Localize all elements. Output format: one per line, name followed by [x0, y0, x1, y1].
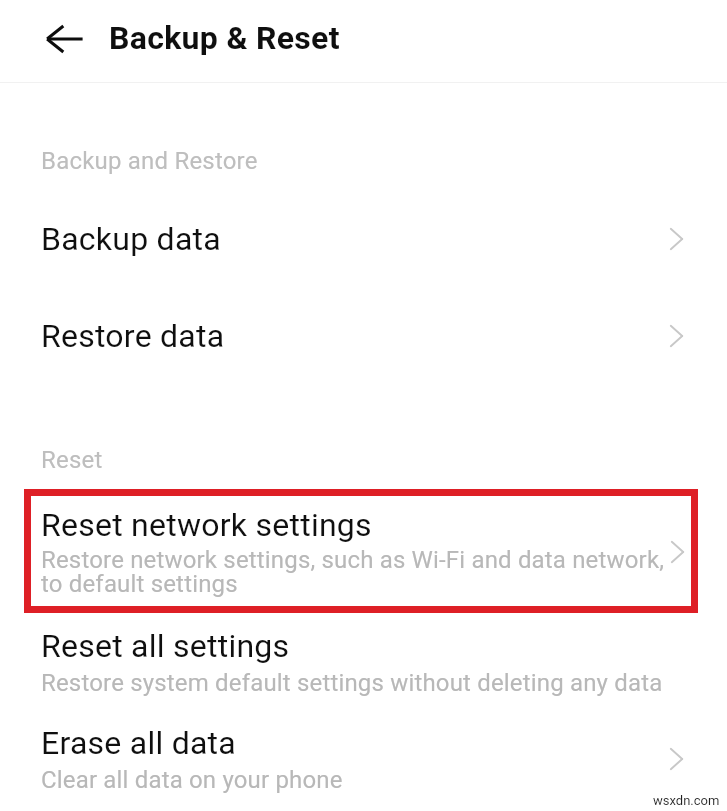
button[interactable]: Restore data [0, 313, 727, 359]
button[interactable]: Erase all data [0, 721, 727, 797]
staticText: Backup and Restore [41, 147, 258, 175]
button[interactable]: Reset network settings [24, 489, 698, 613]
staticText: Erase all data [41, 724, 236, 762]
staticText: Restore system default settings without … [41, 669, 663, 697]
staticText: Reset [41, 446, 103, 474]
staticText: Restore network settings, such as Wi-Fi … [41, 546, 665, 598]
staticText: wsxdn.com [653, 793, 720, 808]
button[interactable]: Back [36, 16, 84, 64]
staticText: Backup data [41, 220, 221, 258]
staticText: Reset all settings [41, 627, 290, 665]
staticText: Backup & Reset [109, 19, 340, 57]
button[interactable]: Backup data [0, 216, 727, 262]
staticText: Clear all data on your phone [41, 766, 343, 794]
staticText: Reset network settings [41, 506, 372, 544]
button[interactable]: Reset all settings [0, 624, 727, 700]
staticText: Restore data [41, 317, 225, 355]
